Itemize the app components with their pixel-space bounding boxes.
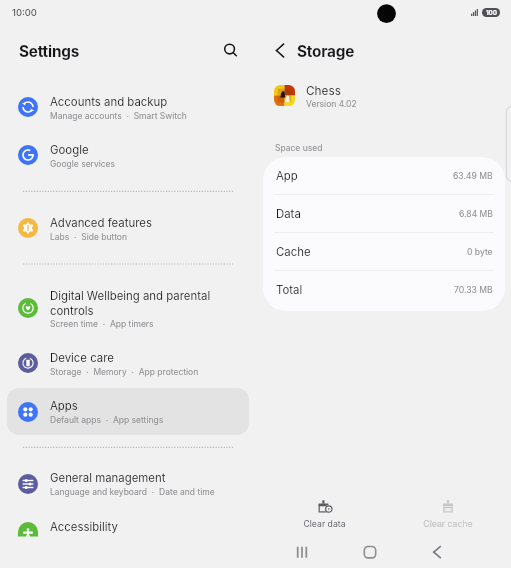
button[interactable] bbox=[7, 83, 249, 130]
button[interactable] bbox=[7, 508, 249, 555]
staticText: Manage accounts · Smart Switch bbox=[50, 111, 187, 121]
staticText: Device care bbox=[50, 351, 114, 365]
staticText: 0 byte bbox=[467, 247, 493, 257]
button[interactable]: Recents bbox=[287, 537, 317, 568]
button[interactable] bbox=[7, 388, 249, 435]
staticText: Apps bbox=[50, 399, 78, 413]
staticText: Settings bbox=[19, 42, 80, 61]
button[interactable]: App bbox=[263, 157, 505, 195]
staticText: Accessibility bbox=[50, 520, 118, 534]
staticText: Storage bbox=[297, 42, 355, 61]
button[interactable]: Back bbox=[268, 32, 305, 69]
button[interactable] bbox=[7, 204, 249, 251]
button[interactable] bbox=[7, 339, 249, 386]
staticText: Total bbox=[276, 283, 303, 297]
button[interactable]: Back bbox=[420, 537, 450, 568]
staticText: Clear cache bbox=[423, 519, 473, 530]
staticText: 6.84 MB bbox=[459, 209, 493, 219]
staticText: Storage · Memory · App protection bbox=[50, 367, 199, 377]
staticText: 70.33 MB bbox=[454, 285, 493, 295]
button[interactable] bbox=[7, 280, 249, 336]
staticText: Chess bbox=[306, 84, 341, 98]
button[interactable]: Clear data bbox=[282, 494, 366, 534]
staticText: Advanced features bbox=[50, 216, 152, 230]
button[interactable]: Home bbox=[355, 537, 385, 568]
staticText: General management bbox=[50, 471, 166, 485]
staticText: 100 bbox=[486, 9, 497, 17]
staticText: Default apps · App settings bbox=[50, 415, 164, 425]
button[interactable]: Clear cache bbox=[406, 494, 490, 534]
staticText: Space used bbox=[275, 143, 323, 153]
staticText: App bbox=[276, 169, 298, 183]
staticText: Language and keyboard · Date and time bbox=[50, 487, 215, 497]
staticText: Google services bbox=[50, 159, 116, 169]
staticText: Digital Wellbeing and parental controls bbox=[50, 289, 211, 317]
staticText: Accounts and backup bbox=[50, 95, 168, 109]
button[interactable]: Data bbox=[263, 195, 505, 233]
staticText: Version 4.02 bbox=[306, 99, 357, 109]
button[interactable]: Total bbox=[263, 271, 505, 309]
button[interactable] bbox=[7, 460, 249, 507]
button[interactable]: Cache bbox=[263, 233, 505, 271]
staticText: Data bbox=[276, 207, 301, 221]
staticText: Google bbox=[50, 143, 89, 157]
button[interactable] bbox=[7, 131, 249, 178]
staticText: Clear data bbox=[303, 519, 346, 530]
staticText: Labs · Side button bbox=[50, 232, 127, 242]
staticText: Cache bbox=[276, 245, 311, 259]
button[interactable]: Search bbox=[212, 31, 248, 67]
staticText: 10:00 bbox=[12, 7, 37, 18]
staticText: Screen time · App timers bbox=[50, 319, 154, 329]
staticText: 63.49 MB bbox=[453, 171, 493, 181]
